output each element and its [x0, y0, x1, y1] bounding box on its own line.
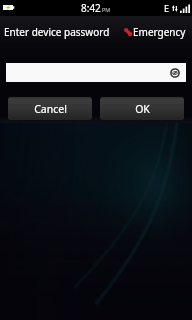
staticText: Emergency [133, 25, 186, 39]
staticText: Cancel [34, 102, 67, 116]
staticText: OK [135, 102, 150, 116]
button[interactable]: Show password [6, 63, 186, 82]
other: Battery charging [3, 5, 13, 10]
staticText: PM [102, 6, 111, 13]
button[interactable]: Emergency [119, 22, 187, 42]
button[interactable]: Cancel [8, 97, 92, 120]
staticText: Enter device password [4, 25, 110, 39]
staticText: 8:42 [81, 1, 101, 15]
button[interactable]: Show password [170, 68, 180, 78]
button[interactable]: OK [100, 97, 184, 120]
staticText: E [164, 2, 170, 14]
